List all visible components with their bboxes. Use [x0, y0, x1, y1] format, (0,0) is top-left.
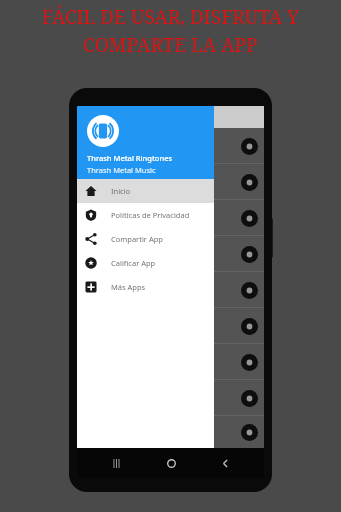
staticText: COMPARTE LA APP — [83, 32, 258, 58]
button[interactable]: Políticas de Privacidad — [77, 203, 214, 227]
staticText: Calificar App — [111, 258, 156, 268]
button[interactable]: Dark Thrash Tone — [77, 380, 264, 415]
button[interactable]: Play Dark Thrash Tone — [234, 383, 264, 413]
button[interactable]: Metal Bell Ring — [77, 416, 264, 448]
button[interactable]: Guitar Solo Tone — [77, 236, 264, 271]
staticText: Heavy Riffs — [91, 212, 133, 223]
staticText: FÁCIL DE USAR, DISFRUTA Y — [42, 4, 299, 30]
button[interactable]: Play Metal Alarm Sound — [234, 167, 264, 197]
button[interactable]: Speed Metal Drum — [77, 344, 264, 379]
button[interactable]: Drums and Basses — [77, 272, 264, 307]
button[interactable]: Home — [156, 448, 186, 478]
staticText: Drums and Basses — [91, 284, 161, 295]
staticText: Inicio — [111, 186, 131, 196]
staticText: Guitar Solo Tone — [91, 248, 153, 259]
button[interactable]: Compartir App — [77, 227, 214, 251]
button[interactable]: Metal Alarm Sound — [77, 164, 264, 199]
staticText: Metal Alarm Sound — [91, 176, 163, 187]
button[interactable]: Inicio — [77, 179, 214, 203]
button[interactable]: Play Heavy Riffs — [234, 203, 264, 233]
staticText: Thrash Metal Music — [87, 165, 156, 175]
staticText: Thrash Metal Ringtone — [91, 140, 177, 151]
button[interactable]: Play Drums and Basses — [234, 275, 264, 305]
button[interactable]: Play Thrash Metal Ringtone — [234, 131, 264, 161]
staticText: Thrash Metal Ringtones — [87, 153, 173, 163]
button[interactable]: Electric Scream — [77, 308, 264, 343]
staticText: Compartir App — [111, 234, 163, 244]
button[interactable]: Heavy Riffs — [77, 200, 264, 235]
button[interactable]: Play Electric Scream — [234, 311, 264, 341]
button[interactable]: Thrash Metal Ringtones — [77, 106, 214, 179]
button[interactable]: Play Speed Metal Drum — [234, 347, 264, 377]
button[interactable]: Más Apps — [77, 275, 214, 299]
button[interactable]: Recent apps — [101, 448, 131, 478]
button[interactable]: Play Guitar Solo Tone — [234, 239, 264, 269]
button[interactable]: Back — [210, 448, 240, 478]
button[interactable]: Play Metal Bell Ring — [234, 417, 264, 447]
staticText: Políticas de Privacidad — [111, 210, 190, 220]
button[interactable]: Calificar App — [77, 251, 214, 275]
staticText: Más Apps — [111, 282, 146, 292]
button[interactable]: Thrash Metal Ringtone — [77, 128, 264, 163]
